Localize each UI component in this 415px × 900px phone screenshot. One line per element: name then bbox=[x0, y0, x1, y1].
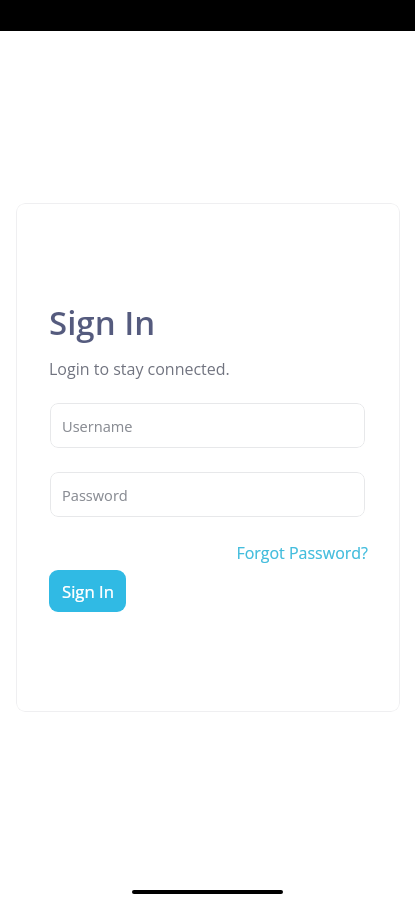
button[interactable]: Forgot Password? bbox=[16, 542, 368, 564]
staticText: Sign In bbox=[49, 300, 156, 345]
button[interactable]: Sign In bbox=[49, 570, 126, 612]
staticText: Forgot Password? bbox=[236, 542, 368, 564]
staticText: Sign In bbox=[62, 580, 114, 603]
staticText: Login to stay connected. bbox=[49, 358, 230, 380]
staticText: Username bbox=[62, 416, 133, 436]
button[interactable]: Username bbox=[50, 403, 365, 448]
staticText: Password bbox=[62, 485, 128, 505]
button[interactable]: Password bbox=[50, 472, 365, 517]
